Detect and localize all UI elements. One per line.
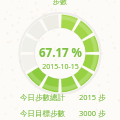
staticText: 3000 步 [79, 108, 106, 118]
staticText: 2015 步 [79, 92, 106, 102]
staticText: 今日目標步數 [20, 109, 65, 118]
button[interactable]: 今日目標步數 [20, 108, 110, 118]
staticText: 67.17 % [39, 45, 82, 61]
staticText: 2015-10-15 [42, 62, 79, 72]
staticText: 今日步數總計 [20, 93, 65, 102]
button[interactable]: 今日步數總計 [20, 92, 110, 102]
staticText: 步數 [53, 0, 67, 6]
button[interactable]: Daily step progress 67.17 percent [0, 0, 120, 120]
